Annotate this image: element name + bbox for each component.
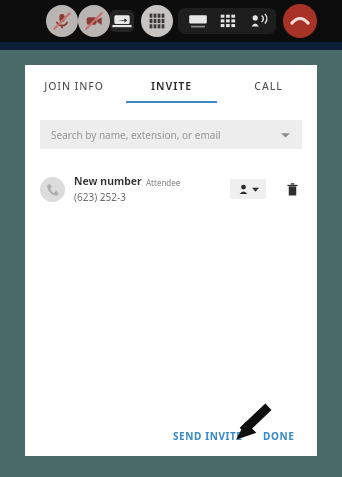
- staticText: SEND INVITE: [173, 429, 243, 443]
- button[interactable]: CALL: [220, 65, 317, 107]
- button[interactable]: DONE: [257, 423, 301, 449]
- button[interactable]: Remove attendee: [282, 179, 302, 199]
- staticText: (623) 252-3: [74, 190, 126, 204]
- button[interactable]: New number: [25, 167, 317, 211]
- button[interactable]: INVITE: [123, 65, 220, 107]
- staticText: Attendee: [146, 177, 181, 188]
- staticText: JOIN INFO: [44, 79, 104, 93]
- button[interactable]: Change layout: [217, 12, 239, 30]
- button[interactable]: Closed captions: [187, 12, 209, 30]
- staticText: New number: [74, 174, 142, 188]
- button[interactable]: JOIN INFO: [25, 65, 123, 107]
- staticText: INVITE: [151, 79, 192, 93]
- button[interactable]: Change role: [230, 179, 266, 199]
- button[interactable]: Unmute microphone: [46, 5, 78, 37]
- staticText: CALL: [254, 79, 283, 93]
- button[interactable]: Search by name, extension, or email: [40, 120, 302, 149]
- button[interactable]: Share screen: [110, 10, 134, 32]
- button[interactable]: Audio settings: [248, 12, 268, 30]
- staticText: Search by name, extension, or email: [51, 128, 221, 142]
- button[interactable]: Start video: [78, 5, 110, 37]
- button[interactable]: Participants grid: [141, 5, 173, 37]
- button[interactable]: SEND INVITE: [167, 423, 249, 449]
- staticText: DONE: [263, 429, 295, 443]
- button[interactable]: End call: [283, 4, 317, 38]
